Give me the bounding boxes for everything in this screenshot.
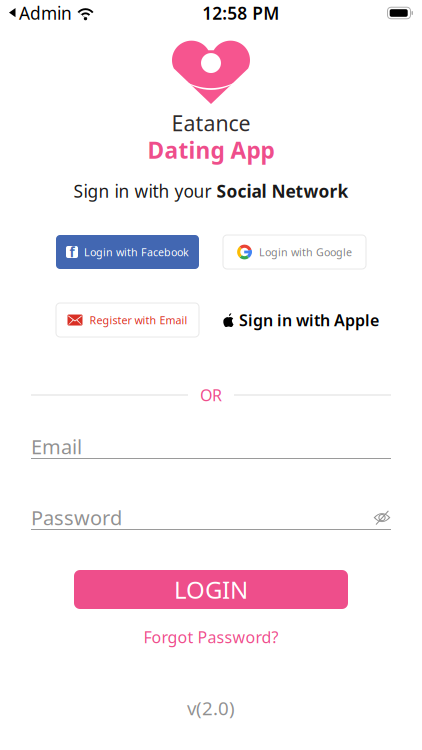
staticText: Admin (19, 1, 72, 24)
button[interactable]: Sign in with Apple (223, 303, 366, 337)
staticText: Login with Facebook (84, 245, 189, 259)
button[interactable]: f (56, 235, 199, 269)
staticText: 12:58 PM (202, 1, 279, 24)
staticText: Password (31, 504, 122, 531)
staticText: f (69, 243, 74, 261)
staticText: OR (200, 384, 222, 406)
staticText: Eatance (171, 109, 250, 137)
button[interactable]: Show password (373, 510, 391, 525)
staticText: v(2.0) (187, 696, 235, 720)
button[interactable]: Forgot Password? (143, 628, 278, 646)
button[interactable]: LOGIN (74, 570, 348, 609)
staticText: Register with Email (89, 313, 187, 327)
staticText: Dating App (147, 135, 274, 165)
staticText: Social Network (216, 179, 348, 202)
staticText: Forgot Password? (143, 626, 278, 648)
staticText: LOGIN (174, 574, 248, 605)
button[interactable]: Register with Email (56, 303, 199, 337)
staticText: Email (31, 433, 82, 460)
staticText: Sign in with Apple (239, 309, 379, 331)
staticText: Login with Google (259, 245, 352, 259)
button[interactable]: Login with Google (223, 235, 366, 269)
staticText: Sign in with your (73, 179, 216, 202)
